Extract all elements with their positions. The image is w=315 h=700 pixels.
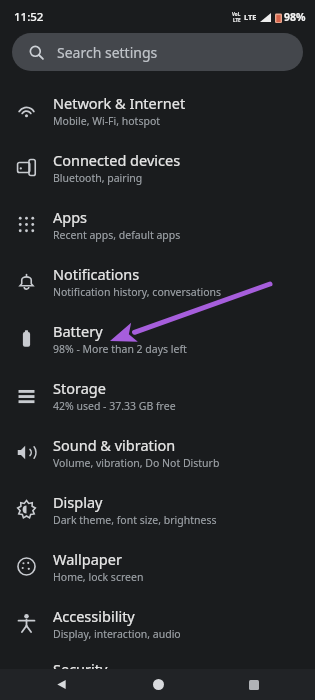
staticText: 98% xyxy=(284,10,306,24)
staticText: 98% - More than 2 days left xyxy=(53,342,187,356)
button[interactable]: Network & Internet xyxy=(0,82,315,139)
staticText: Security xyxy=(53,659,108,679)
staticText: Sound & vibration xyxy=(53,435,176,455)
staticText: Display xyxy=(53,492,103,512)
staticText: Screen lock, Find My Device, app securit… xyxy=(53,680,254,694)
staticText: Notifications xyxy=(53,264,140,284)
button[interactable]: Connected devices xyxy=(0,139,315,196)
staticText: Recent apps, default apps xyxy=(53,228,181,242)
staticText: VoL xyxy=(232,11,241,17)
staticText: Search settings xyxy=(57,43,158,62)
staticText: Connected devices xyxy=(53,150,181,170)
button[interactable]: Security xyxy=(0,652,315,700)
staticText: 11:52 xyxy=(14,9,44,25)
staticText: Display, interaction, audio xyxy=(53,627,181,641)
staticText: Bluetooth, pairing xyxy=(53,171,143,185)
button[interactable]: Notifications xyxy=(0,253,315,310)
button[interactable]: Storage xyxy=(0,367,315,424)
staticText: Storage xyxy=(53,378,106,398)
button[interactable]: Sound & vibration xyxy=(0,424,315,481)
staticText: Network & Internet xyxy=(53,93,186,113)
button[interactable]: Wallpaper xyxy=(0,538,315,595)
staticText: Battery xyxy=(53,321,103,341)
staticText: Dark theme, font size, brightness xyxy=(53,513,217,527)
button[interactable]: Apps xyxy=(0,196,315,253)
button[interactable]: Display xyxy=(0,481,315,538)
button[interactable]: Recent apps xyxy=(237,669,271,700)
staticText: Wallpaper xyxy=(53,549,122,569)
button[interactable]: Accessibility xyxy=(0,595,315,652)
staticText: Notification history, conversations xyxy=(53,285,222,299)
button[interactable]: Search settings xyxy=(12,33,303,71)
staticText: Volume, vibration, Do Not Disturb xyxy=(53,456,220,470)
staticText: Home, lock screen xyxy=(53,570,144,584)
staticText: Apps xyxy=(53,207,88,227)
staticText: Accessibility xyxy=(53,606,135,626)
button[interactable]: Home xyxy=(141,669,175,700)
staticText: Mobile, Wi-Fi, hotspot xyxy=(53,114,161,128)
button[interactable]: Back xyxy=(44,669,78,700)
staticText: 42% used - 37.33 GB free xyxy=(53,399,176,413)
staticText: LTE xyxy=(233,17,241,23)
staticText: LTE xyxy=(244,12,257,22)
button[interactable]: Battery xyxy=(0,310,315,367)
